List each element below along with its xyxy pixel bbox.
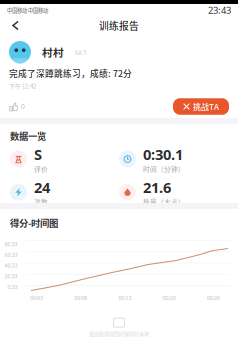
staticText: 23:43 — [208, 4, 231, 16]
staticText: 0 — [21, 102, 25, 111]
staticText: 0.33 — [7, 283, 17, 290]
staticText: 完成了深蹲跳练习，成绩: 72分 — [9, 67, 132, 79]
staticText: 中国移动 中国移动 — [7, 6, 48, 14]
staticText: Lv.1 — [75, 48, 87, 56]
staticText: 00:13 — [118, 294, 131, 301]
staticText: 训练报告 — [99, 18, 139, 33]
staticText: 热量（大卡） — [143, 197, 185, 207]
staticText: 00:03 — [30, 294, 43, 301]
staticText: 00:08 — [74, 294, 87, 301]
staticText: 21.6 — [143, 178, 171, 197]
staticText: 挑战TA — [193, 101, 219, 112]
staticText: 40.33 — [4, 262, 17, 269]
staticText: 时间（分钟） — [143, 164, 185, 174]
staticText: 0:30.1 — [143, 144, 183, 164]
staticText: 次数 — [34, 197, 48, 207]
staticText: 数据一览 — [10, 129, 46, 142]
staticText: S — [34, 144, 42, 164]
button[interactable]: Back — [0, 16, 26, 34]
staticText: 80.33 — [4, 240, 17, 248]
staticText: 00:20 — [163, 294, 176, 301]
staticText: 下午 11:42 — [9, 81, 36, 90]
staticText: 00:26 — [207, 294, 220, 301]
staticText: 该训练视频暂时保存在本地 — [89, 330, 149, 338]
button[interactable]: 0 — [9, 100, 25, 113]
staticText: 评价 — [34, 164, 48, 174]
button[interactable]: 挑战TA — [173, 98, 229, 115]
staticText: 60.33 — [4, 251, 17, 258]
staticText: 村村 — [42, 44, 64, 60]
staticText: 得分-时间图 — [10, 216, 58, 229]
staticText: 20.33 — [4, 273, 17, 280]
staticText: 24 — [34, 178, 50, 197]
